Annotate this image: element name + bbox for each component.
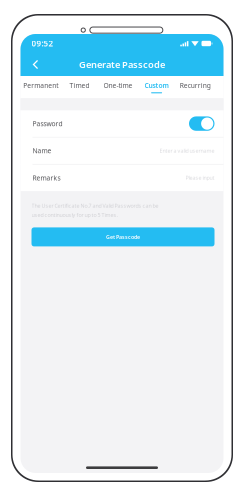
staticText: Custom	[145, 81, 169, 90]
button[interactable]: Custom	[137, 76, 176, 98]
staticText: used continuously for up to 5 Times.	[31, 211, 117, 218]
button[interactable]: Remarks	[20, 165, 223, 191]
staticText: 09:52	[31, 38, 53, 49]
button[interactable]: Get Passcode	[31, 227, 214, 246]
button[interactable]: Password	[20, 110, 223, 137]
staticText: The User Certificate No.7 and Valid Pass…	[31, 202, 158, 209]
staticText: Name	[32, 146, 51, 155]
button[interactable]: One-time	[99, 76, 137, 98]
button[interactable]: Permanent	[21, 76, 60, 98]
staticText: Password	[32, 119, 62, 128]
staticText: Remarks	[32, 173, 60, 182]
staticText: Generate Passcode	[79, 58, 165, 71]
staticText: One-time	[103, 81, 132, 90]
staticText: Timed	[69, 81, 89, 90]
staticText: Please input	[185, 174, 214, 181]
button[interactable]: Recurring	[176, 76, 214, 98]
staticText: Permanent	[23, 81, 58, 90]
staticText: Recurring	[180, 81, 211, 90]
staticText: Enter a valid username	[159, 147, 214, 154]
button[interactable]: Back	[26, 55, 44, 73]
button[interactable]: Name	[20, 137, 223, 164]
button[interactable]: Timed	[60, 76, 99, 98]
staticText: Get Passcode	[106, 233, 140, 240]
